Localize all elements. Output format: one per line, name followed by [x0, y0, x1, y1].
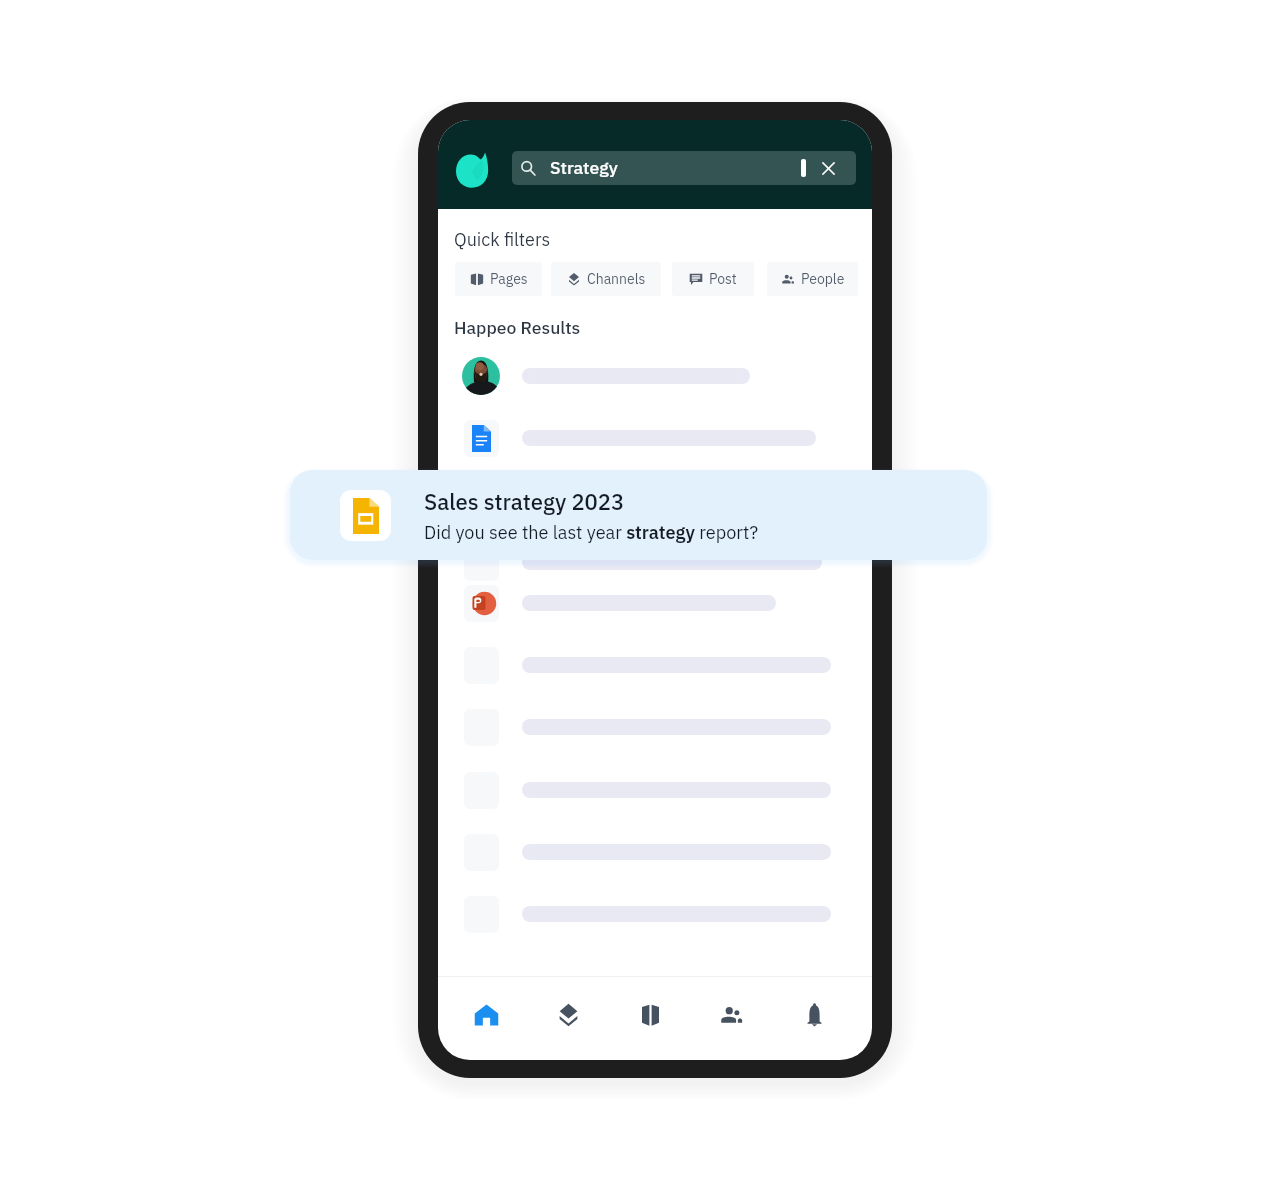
staticText: Strategy	[550, 155, 618, 181]
staticText: Did you see the last year strategy repor…	[424, 519, 759, 546]
staticText: Quick filters	[454, 227, 551, 254]
button[interactable]: Channels	[540, 986, 596, 1042]
button[interactable]	[438, 634, 872, 696]
button[interactable]	[438, 759, 872, 821]
button[interactable]: Pages	[455, 262, 542, 296]
staticText: Pages	[490, 269, 528, 290]
button[interactable]: Notifications	[786, 986, 842, 1042]
button[interactable]	[438, 696, 872, 758]
staticText: Happeo Results	[454, 315, 581, 341]
button[interactable]	[438, 345, 872, 407]
staticText: Channels	[587, 269, 646, 290]
staticText: Sales strategy 2023	[424, 486, 625, 519]
staticText: Post	[709, 269, 737, 290]
staticText: People	[801, 269, 845, 290]
button[interactable]: Sales strategy 2023	[290, 470, 987, 560]
button[interactable]: Happeo home	[452, 150, 492, 190]
button[interactable]: People	[767, 262, 858, 296]
button[interactable]	[438, 572, 872, 634]
button[interactable]	[438, 469, 872, 531]
button[interactable]: People	[703, 986, 759, 1042]
button[interactable]: Channels	[551, 262, 661, 296]
button[interactable]	[438, 821, 872, 883]
button[interactable]	[438, 407, 872, 469]
button[interactable]	[438, 883, 872, 945]
button[interactable]	[438, 531, 872, 593]
button[interactable]: Post	[672, 262, 754, 296]
button[interactable]: Pages	[622, 986, 678, 1042]
button[interactable]: Home	[458, 986, 514, 1042]
button[interactable]: Clear search	[817, 157, 839, 179]
button[interactable]: Strategy	[512, 151, 856, 185]
